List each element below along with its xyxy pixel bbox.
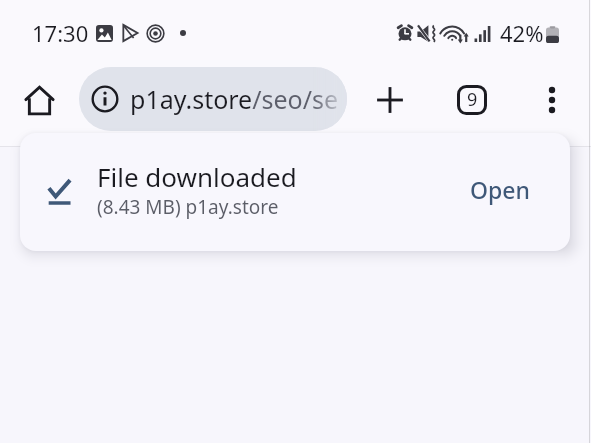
button[interactable]: p1ay.store/seo/se [79, 67, 347, 131]
staticText: Open [470, 174, 530, 205]
button[interactable]: Open [450, 163, 550, 216]
button[interactable]: Switch tabs, 9 open [444, 58, 500, 142]
staticText: 42% [500, 18, 544, 48]
staticText: 17:30 [32, 18, 89, 48]
staticText: File downloaded [97, 159, 297, 194]
staticText: (8.43 MB) p1ay.store [97, 194, 279, 220]
staticText: 9 [467, 87, 478, 112]
button[interactable]: Home [11, 58, 67, 142]
button[interactable]: More options [524, 58, 580, 142]
button[interactable]: New tab [362, 58, 418, 142]
staticText: p1ay.store/seo/se [130, 82, 339, 116]
